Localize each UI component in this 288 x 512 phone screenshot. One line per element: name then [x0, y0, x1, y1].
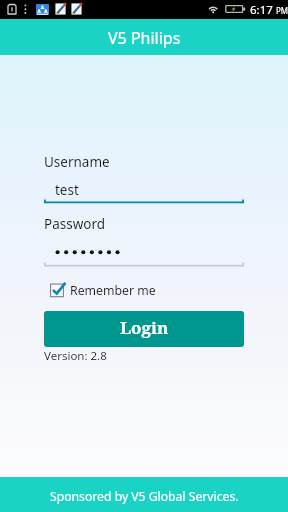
- staticText: V5 Philips: [108, 27, 181, 49]
- staticText: PM: [276, 5, 288, 16]
- staticText: Remember me: [70, 282, 156, 299]
- staticText: 6:17: [250, 2, 273, 18]
- button[interactable]: Remember me: [48, 280, 156, 300]
- staticText: Username: [44, 153, 110, 171]
- staticText: Version: 2.8: [44, 348, 107, 364]
- staticText: test: [55, 181, 79, 199]
- button[interactable]: Login: [44, 311, 244, 347]
- staticText: Password: [44, 215, 106, 233]
- staticText: Sponsored by V5 Global Services.: [50, 488, 239, 505]
- staticText: Login: [120, 316, 169, 339]
